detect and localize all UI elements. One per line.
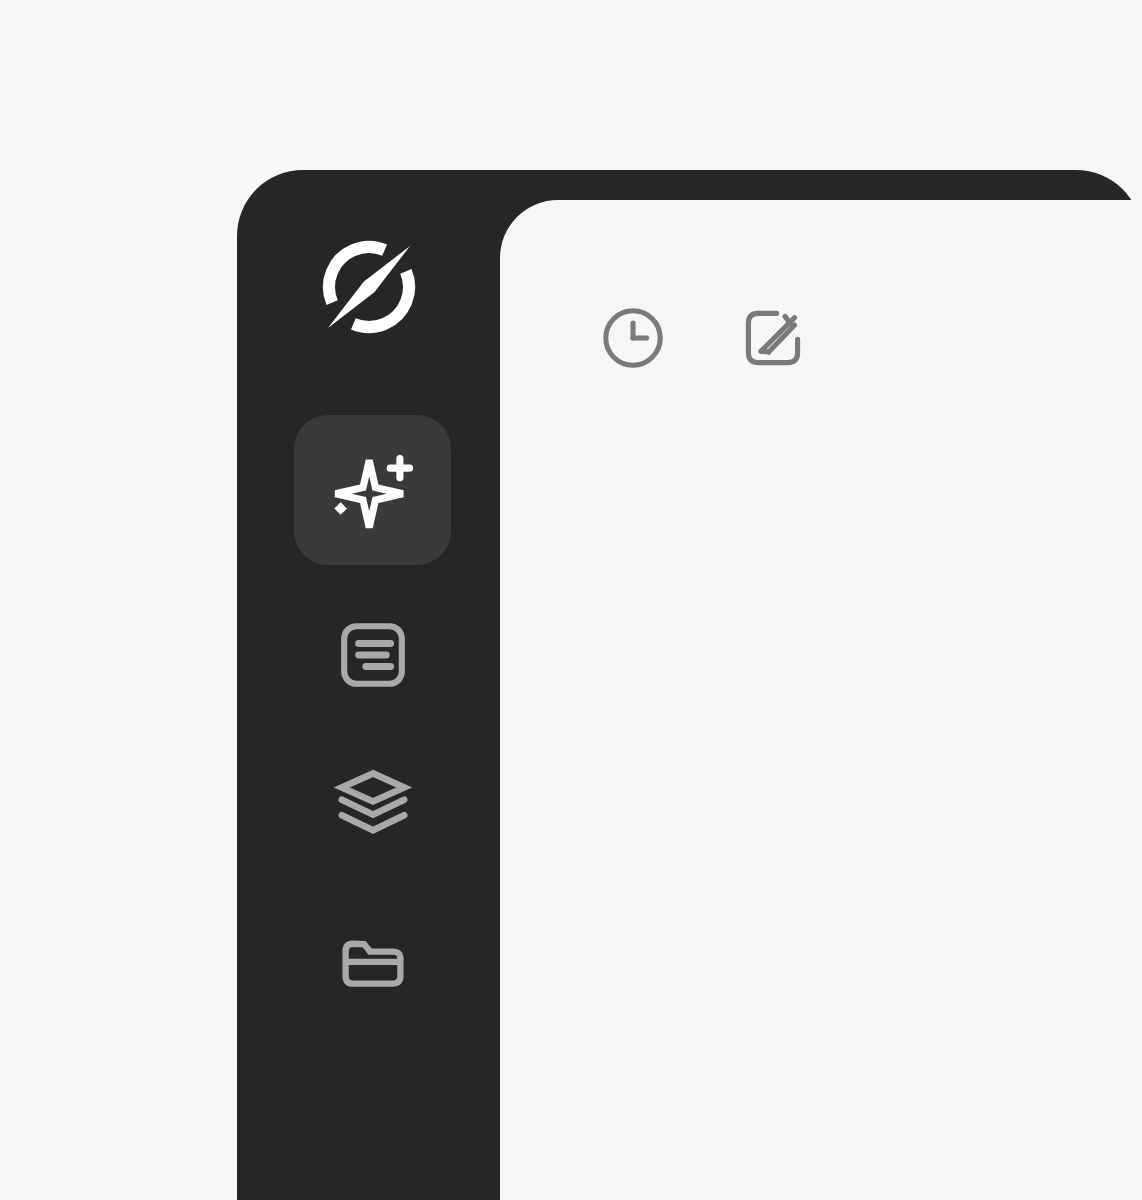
button[interactable]: Notes	[294, 595, 451, 715]
button[interactable]: AI assistant	[294, 415, 451, 565]
button[interactable]: Folders	[294, 903, 451, 1023]
button[interactable]: Home	[304, 222, 434, 352]
button[interactable]: New note	[740, 305, 806, 371]
button[interactable]: History	[600, 305, 666, 371]
button[interactable]: Layers	[294, 743, 451, 863]
